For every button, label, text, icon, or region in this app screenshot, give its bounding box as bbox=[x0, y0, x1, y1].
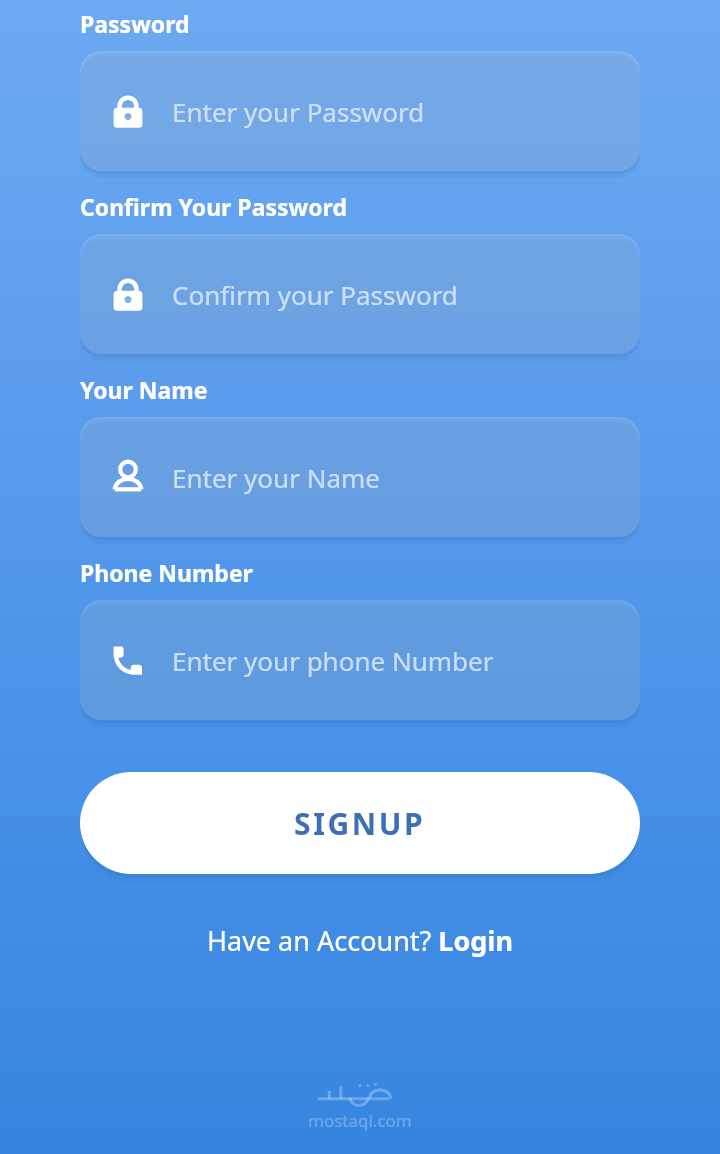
staticText: Your Name bbox=[80, 374, 208, 405]
staticText: Confirm Your Password bbox=[80, 191, 347, 222]
button[interactable]: Enter your Name bbox=[80, 417, 640, 537]
staticText: Enter your phone Number bbox=[172, 643, 494, 678]
staticText: Enter your Password bbox=[172, 94, 425, 129]
staticText: mostaql.com bbox=[308, 1109, 412, 1132]
staticText: Have an Account? Login bbox=[207, 922, 513, 959]
staticText: Phone Number bbox=[80, 557, 253, 588]
staticText: SIGNUP bbox=[294, 803, 426, 844]
button[interactable]: SIGNUP bbox=[80, 772, 640, 874]
staticText: Confirm your Password bbox=[172, 277, 458, 312]
button[interactable]: Confirm your Password bbox=[80, 234, 640, 354]
button[interactable]: Enter your Password bbox=[80, 51, 640, 171]
staticText: Enter your Name bbox=[172, 460, 380, 495]
button[interactable]: Have an Account? Login bbox=[195, 916, 525, 965]
staticText: Password bbox=[80, 8, 190, 39]
button[interactable]: Enter your phone Number bbox=[80, 600, 640, 720]
